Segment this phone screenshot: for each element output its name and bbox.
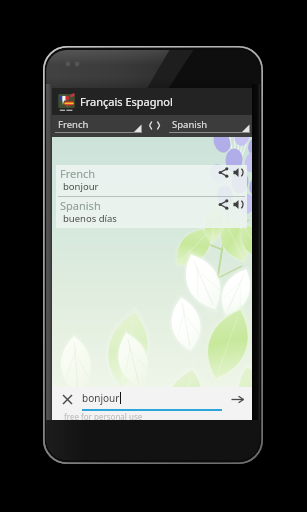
staticText: bonjour — [63, 180, 99, 193]
button[interactable]: French — [52, 115, 144, 137]
button[interactable]: French — [56, 165, 247, 197]
button[interactable]: Spanish — [56, 197, 247, 228]
button[interactable]: Share — [216, 197, 231, 212]
staticText: French — [58, 118, 89, 131]
button[interactable]: Swap languages — [144, 115, 166, 137]
button[interactable]: Français Espagnol — [52, 88, 252, 115]
button[interactable]: Translate — [222, 387, 252, 411]
staticText: Spanish — [172, 118, 208, 131]
button[interactable]: Spanish — [166, 115, 252, 137]
button[interactable]: Share — [216, 165, 231, 180]
button[interactable]: Clear — [52, 387, 82, 411]
button[interactable]: Speak — [231, 165, 246, 180]
staticText: bonjour — [82, 391, 120, 405]
staticText: buenos días — [63, 212, 117, 225]
staticText: French — [60, 166, 216, 180]
staticText: free for personal use — [64, 411, 143, 420]
staticText: Français Espagnol — [80, 94, 173, 109]
staticText: Spanish — [60, 198, 216, 212]
button[interactable]: Speak — [231, 197, 246, 212]
